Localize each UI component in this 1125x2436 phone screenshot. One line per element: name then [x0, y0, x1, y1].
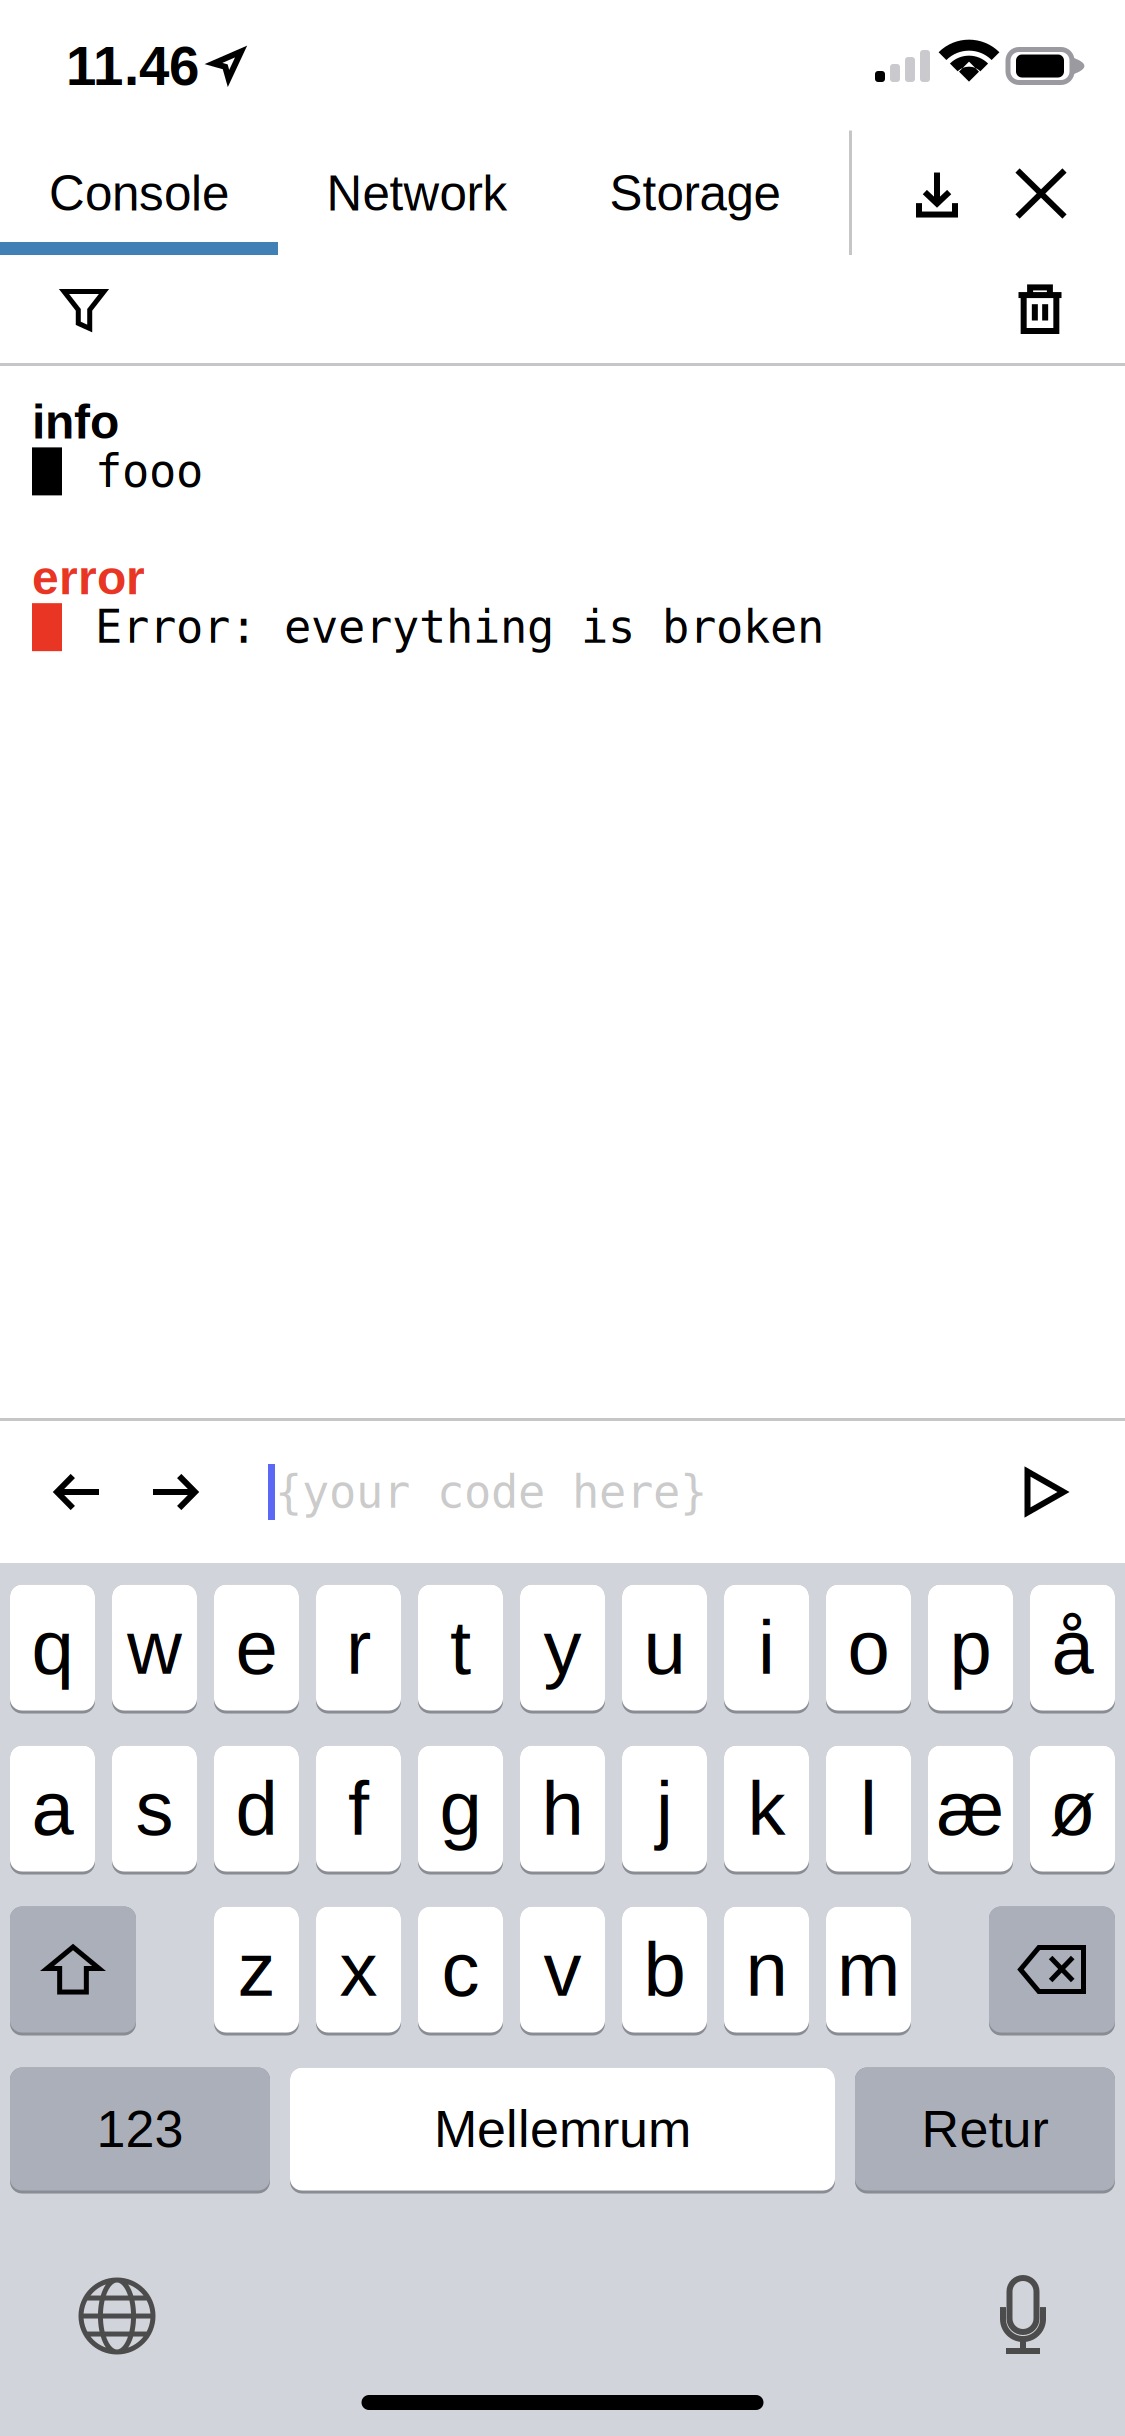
- button[interactable]: h: [520, 1747, 605, 1873]
- staticText: Mellemrum: [434, 2100, 691, 2158]
- staticText: y: [543, 1605, 581, 1690]
- staticText: Error: everything is broken: [95, 601, 824, 654]
- button[interactable]: q: [10, 1586, 95, 1712]
- staticText: b: [643, 1927, 685, 2012]
- button[interactable]: t: [418, 1586, 503, 1712]
- staticText: info: [32, 395, 119, 449]
- button[interactable]: x: [316, 1908, 401, 2034]
- staticText: x: [339, 1927, 377, 2012]
- button[interactable]: b: [622, 1908, 707, 2034]
- staticText: l: [860, 1766, 877, 1851]
- staticText: ø: [1049, 1766, 1095, 1851]
- staticText: r: [346, 1605, 371, 1690]
- staticText: Network: [326, 166, 507, 221]
- staticText: g: [439, 1766, 481, 1851]
- staticText: u: [643, 1605, 685, 1690]
- button[interactable]: z: [214, 1908, 299, 2034]
- staticText: a: [31, 1766, 73, 1851]
- button[interactable]: i: [724, 1586, 809, 1712]
- button[interactable]: a: [10, 1747, 95, 1873]
- button[interactable]: Retur: [855, 2069, 1115, 2192]
- button[interactable]: g: [418, 1747, 503, 1873]
- button[interactable]: k: [724, 1747, 809, 1873]
- staticText: d: [235, 1766, 277, 1851]
- button[interactable]: 123: [10, 2069, 270, 2192]
- staticText: z: [237, 1927, 275, 2012]
- staticText: s: [135, 1766, 173, 1851]
- button[interactable]: Dictate: [963, 2256, 1083, 2376]
- button[interactable]: å: [1030, 1586, 1115, 1712]
- button[interactable]: j: [622, 1747, 707, 1873]
- staticText: m: [837, 1927, 900, 2012]
- button[interactable]: Next keyboard: [57, 2256, 177, 2376]
- button[interactable]: Clear console: [980, 255, 1100, 363]
- staticText: å: [1051, 1605, 1093, 1690]
- staticText: Storage: [609, 166, 780, 221]
- staticText: k: [747, 1766, 785, 1851]
- staticText: {your code here}: [275, 1466, 707, 1518]
- button[interactable]: æ: [928, 1747, 1013, 1873]
- staticText: w: [127, 1605, 182, 1690]
- button[interactable]: Mellemrum: [290, 2069, 835, 2192]
- staticText: Console: [49, 166, 229, 221]
- button[interactable]: f: [316, 1747, 401, 1873]
- button[interactable]: m: [826, 1908, 911, 2034]
- staticText: q: [31, 1605, 73, 1690]
- button[interactable]: s: [112, 1747, 197, 1873]
- button[interactable]: Next: [126, 1421, 223, 1563]
- staticText: p: [949, 1605, 991, 1690]
- staticText: i: [758, 1605, 775, 1690]
- staticText: c: [441, 1927, 479, 2012]
- button[interactable]: c: [418, 1908, 503, 2034]
- button[interactable]: Download: [885, 132, 989, 255]
- button[interactable]: Console: [0, 132, 278, 255]
- staticText: n: [745, 1927, 787, 2012]
- button[interactable]: d: [214, 1747, 299, 1873]
- staticText: j: [656, 1766, 673, 1851]
- staticText: e: [235, 1605, 277, 1690]
- button[interactable]: Previous: [29, 1421, 126, 1563]
- button[interactable]: v: [520, 1908, 605, 2034]
- button[interactable]: u: [622, 1586, 707, 1712]
- button[interactable]: Shift: [10, 1908, 136, 2034]
- staticText: f: [348, 1766, 369, 1851]
- staticText: v: [543, 1927, 581, 2012]
- button[interactable]: w: [112, 1586, 197, 1712]
- button[interactable]: Storage: [556, 132, 834, 255]
- button[interactable]: Network: [278, 132, 556, 255]
- staticText: æ: [936, 1766, 1004, 1851]
- button[interactable]: n: [724, 1908, 809, 2034]
- staticText: 123: [96, 2100, 183, 2158]
- staticText: 11.46: [66, 35, 199, 97]
- button[interactable]: y: [520, 1586, 605, 1712]
- button[interactable]: p: [928, 1586, 1013, 1712]
- staticText: fooo: [95, 445, 203, 498]
- button[interactable]: Close: [989, 132, 1093, 255]
- staticText: t: [450, 1605, 471, 1690]
- button[interactable]: r: [316, 1586, 401, 1712]
- button[interactable]: Run: [995, 1421, 1095, 1563]
- button[interactable]: Filter: [25, 255, 143, 363]
- staticText: error: [32, 551, 145, 604]
- button[interactable]: o: [826, 1586, 911, 1712]
- button[interactable]: ø: [1030, 1747, 1115, 1873]
- button[interactable]: e: [214, 1586, 299, 1712]
- staticText: o: [847, 1605, 889, 1690]
- staticText: Retur: [921, 2100, 1048, 2158]
- staticText: h: [541, 1766, 583, 1851]
- button[interactable]: l: [826, 1747, 911, 1873]
- button[interactable]: Backspace: [989, 1908, 1115, 2034]
